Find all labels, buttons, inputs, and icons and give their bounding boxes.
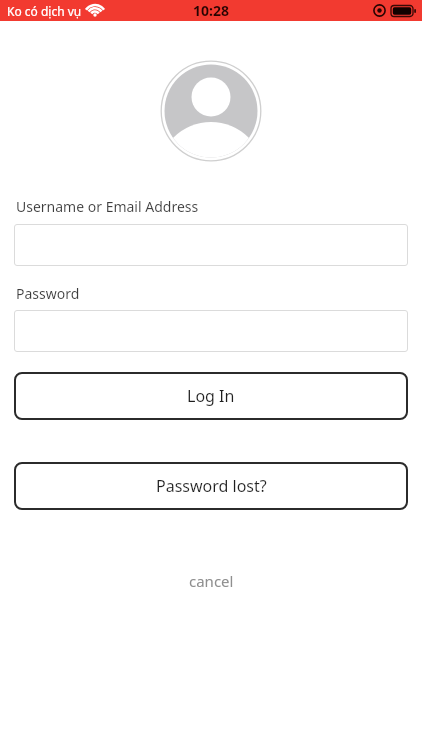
button[interactable]: cancel bbox=[189, 571, 234, 591]
staticText: 10:28 bbox=[193, 1, 229, 20]
button[interactable]: Log In bbox=[14, 372, 408, 420]
staticText: Password bbox=[16, 284, 80, 303]
staticText: cancel bbox=[189, 571, 234, 591]
button[interactable] bbox=[14, 310, 408, 352]
staticText: Username or Email Address bbox=[16, 197, 199, 216]
staticText: Log In bbox=[187, 385, 235, 407]
button[interactable]: Password lost? bbox=[14, 462, 408, 510]
staticText: Password lost? bbox=[156, 475, 267, 497]
staticText: Ko có dịch vụ bbox=[7, 3, 82, 19]
button[interactable] bbox=[14, 224, 408, 266]
